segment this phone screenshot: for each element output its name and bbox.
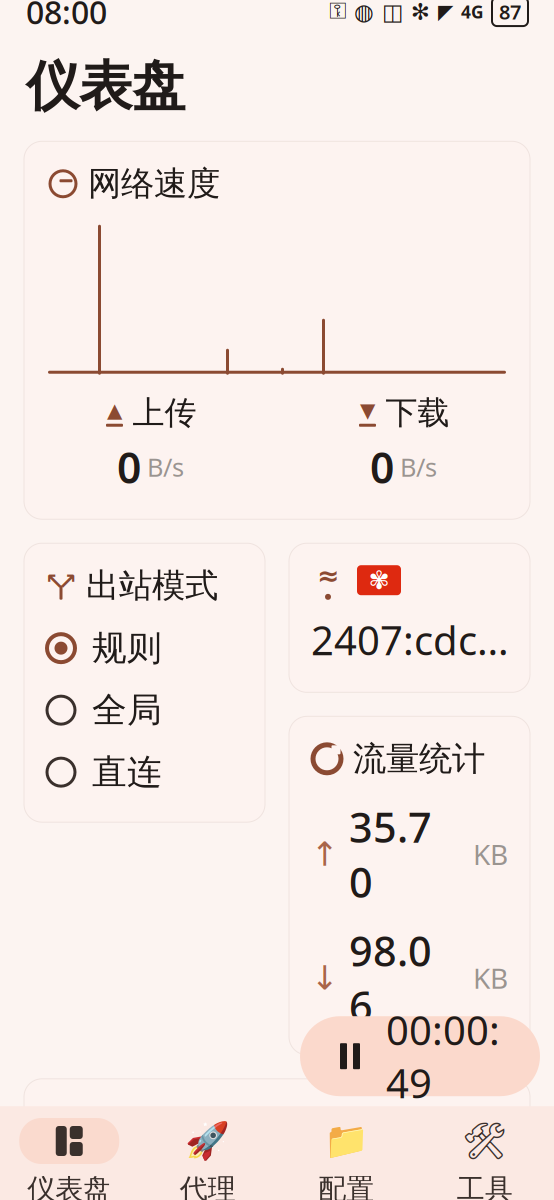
staticText: 代理 bbox=[180, 1172, 236, 1200]
staticText: ⚿ bbox=[329, 1, 346, 23]
button[interactable]: 全局 bbox=[24, 682, 265, 738]
staticText: 🛠 bbox=[462, 1120, 508, 1161]
staticText: 2407:cdc… bbox=[311, 613, 509, 666]
staticText: 仪表盘 bbox=[26, 54, 185, 119]
staticText: 规则 bbox=[92, 627, 162, 669]
staticText: ▼ bbox=[360, 399, 375, 422]
staticText: 00:00:49 bbox=[386, 1003, 500, 1109]
button[interactable]: 🛠 bbox=[415, 1108, 554, 1200]
staticText: 35.70 bbox=[349, 799, 432, 909]
staticText: 0 bbox=[117, 439, 141, 495]
staticText: 出站模式 bbox=[86, 565, 218, 606]
staticText: ≈ bbox=[317, 561, 339, 591]
staticText: 直连 bbox=[92, 751, 162, 793]
button[interactable]: 🚀 bbox=[138, 1108, 277, 1200]
staticText: 流量统计 bbox=[353, 738, 485, 779]
staticText: 📁 bbox=[324, 1120, 369, 1161]
staticText: 工具 bbox=[457, 1172, 513, 1200]
staticText: ↗ bbox=[58, 569, 77, 594]
staticText: ◫ bbox=[382, 0, 403, 25]
button[interactable]: 仪表盘 bbox=[0, 1108, 138, 1200]
staticText: ▲ bbox=[107, 399, 122, 422]
staticText: 98.06 bbox=[349, 923, 432, 1033]
staticText: 08:00 bbox=[26, 0, 107, 33]
staticText: 内网 IP bbox=[90, 1101, 198, 1145]
staticText: B/s bbox=[147, 450, 184, 484]
staticText: 87 bbox=[499, 0, 521, 25]
staticText: KB bbox=[473, 836, 508, 873]
staticText: 仪表盘 bbox=[27, 1172, 111, 1200]
button[interactable]: 00:00:49 bbox=[300, 1016, 540, 1096]
staticText: ↓ bbox=[311, 959, 339, 997]
staticText: ✻ bbox=[411, 0, 430, 25]
staticText: KB bbox=[473, 959, 508, 996]
button[interactable]: 📁 bbox=[277, 1108, 415, 1200]
staticText: 下载 bbox=[385, 393, 449, 432]
button[interactable]: 规则 bbox=[24, 620, 265, 676]
staticText: ✾ bbox=[368, 566, 389, 595]
staticText: 0 bbox=[370, 439, 394, 495]
staticText: 全局 bbox=[92, 689, 162, 731]
staticText: 🚀 bbox=[185, 1120, 230, 1161]
button[interactable]: 直连 bbox=[24, 744, 265, 800]
staticText: 网络速度 bbox=[88, 163, 220, 204]
staticText: ↑ bbox=[311, 835, 339, 873]
staticText: 2403:980 bbox=[46, 1163, 218, 1200]
staticText: 配置 bbox=[318, 1172, 374, 1200]
staticText: 上传 bbox=[132, 393, 196, 432]
staticText: ◤ bbox=[438, 0, 453, 23]
staticText: ↖ bbox=[45, 569, 64, 594]
staticText: B/s bbox=[400, 450, 437, 484]
staticText: 4G bbox=[461, 0, 484, 23]
staticText: ◍ bbox=[354, 0, 374, 25]
